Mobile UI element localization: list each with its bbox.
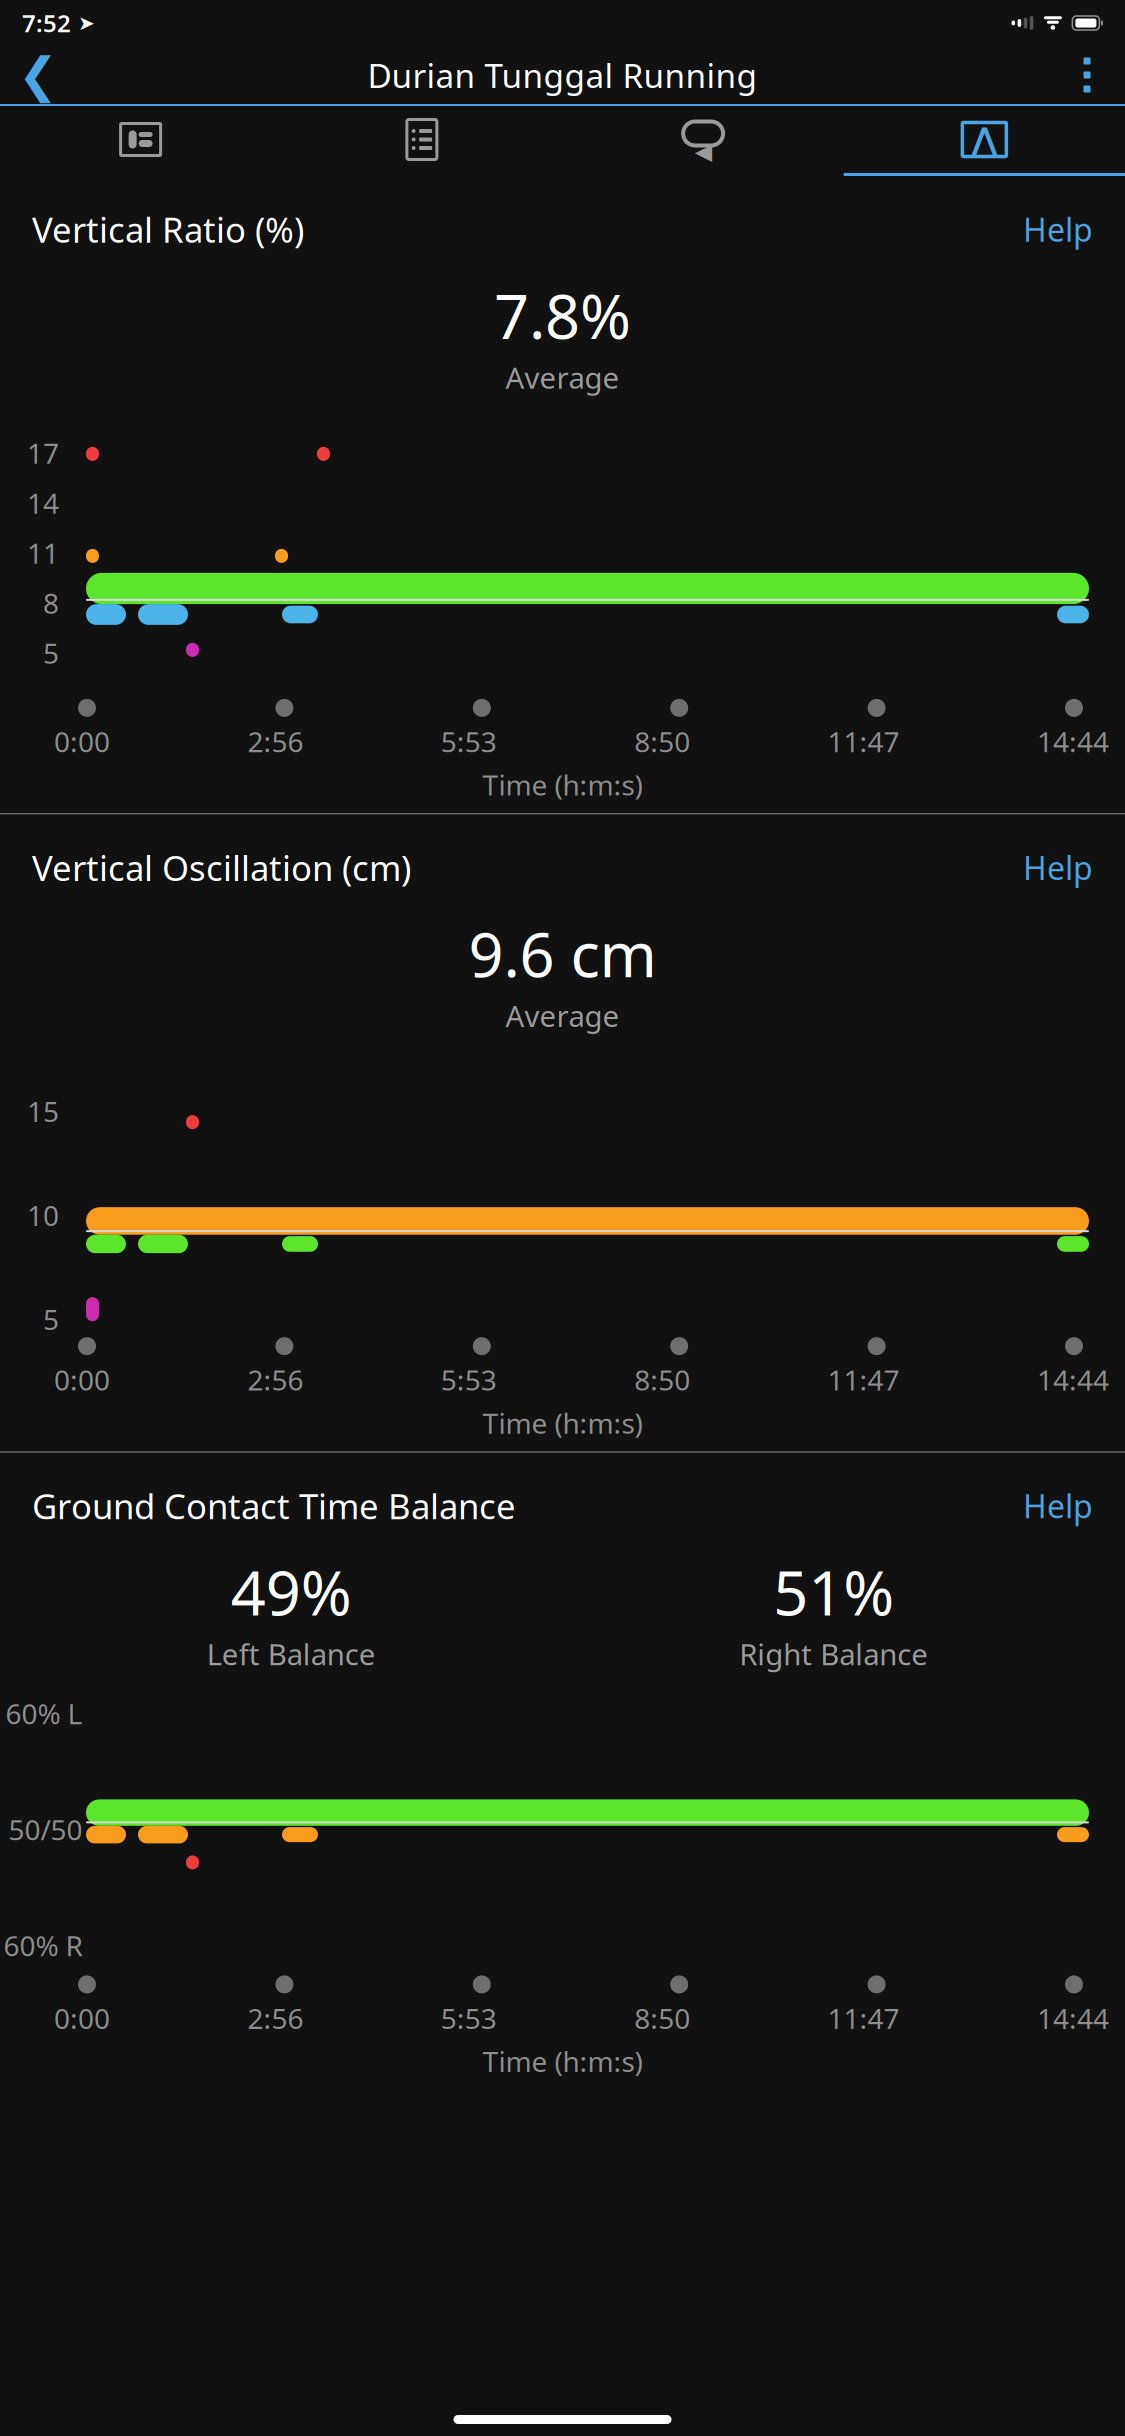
- staticText: 11:47: [828, 723, 900, 760]
- staticText: 60% L: [5, 1695, 82, 1732]
- staticText: 60% R: [3, 1927, 82, 1964]
- staticText: 15: [27, 1093, 59, 1130]
- staticText: 5: [43, 634, 59, 671]
- staticText: 0:00: [54, 723, 110, 760]
- staticText: 5: [43, 1301, 59, 1338]
- staticText: 7:52: [22, 7, 71, 39]
- button[interactable]: Map: [0, 106, 281, 176]
- staticText: 5:53: [441, 1361, 497, 1398]
- staticText: Durian Tunggal Running: [367, 53, 757, 97]
- staticText: 7.8%: [494, 274, 631, 356]
- staticText: ⋀: [971, 121, 998, 158]
- staticText: Help: [1023, 208, 1093, 250]
- button[interactable]: Laps: [562, 106, 844, 176]
- button[interactable]: Help: [1015, 200, 1101, 258]
- button[interactable]: Back: [6, 46, 70, 104]
- staticText: 0:00: [54, 1999, 110, 2037]
- staticText: Time (h:m:s): [482, 2043, 642, 2080]
- staticText: Vertical Oscillation (cm): [32, 844, 411, 890]
- staticText: Time (h:m:s): [482, 1404, 642, 1441]
- staticText: ◀: [695, 139, 712, 164]
- button[interactable]: Details: [281, 106, 562, 176]
- staticText: ❮: [18, 48, 58, 102]
- staticText: 11: [27, 534, 59, 571]
- staticText: 10: [27, 1197, 59, 1234]
- staticText: Help: [1023, 1484, 1093, 1527]
- staticText: Help: [1023, 846, 1093, 889]
- staticText: 14:44: [1037, 723, 1109, 760]
- staticText: 0:00: [54, 1361, 110, 1398]
- staticText: ➤: [78, 12, 95, 34]
- staticText: 5:53: [441, 1999, 497, 2037]
- staticText: 49%: [231, 1551, 352, 1632]
- staticText: 2:56: [247, 723, 303, 760]
- staticText: 50/50: [8, 1811, 82, 1848]
- staticText: 2:56: [247, 1999, 303, 2037]
- staticText: 9.6 cm: [468, 913, 656, 994]
- staticText: 14:44: [1037, 1361, 1109, 1398]
- staticText: Vertical Ratio (%): [32, 206, 304, 252]
- button[interactable]: Help: [1015, 1476, 1101, 1535]
- staticText: 14:44: [1037, 1999, 1109, 2037]
- staticText: 8:50: [634, 1361, 690, 1398]
- staticText: 11:47: [828, 1999, 900, 2037]
- staticText: Left Balance: [207, 1634, 376, 1673]
- staticText: 14: [27, 484, 59, 521]
- staticText: Ground Contact Time Balance: [32, 1483, 516, 1529]
- staticText: Average: [505, 996, 619, 1035]
- staticText: 11:47: [828, 1361, 900, 1398]
- staticText: 8:50: [634, 723, 690, 760]
- staticText: 8:50: [634, 1999, 690, 2037]
- staticText: 2:56: [247, 1361, 303, 1398]
- staticText: 51%: [773, 1551, 894, 1632]
- staticText: 17: [27, 434, 59, 471]
- staticText: 5:53: [441, 723, 497, 760]
- staticText: Right Balance: [739, 1634, 928, 1673]
- button[interactable]: More options: [1055, 46, 1119, 104]
- button[interactable]: Help: [1015, 838, 1101, 897]
- staticText: Time (h:m:s): [482, 766, 642, 803]
- staticText: Average: [505, 358, 619, 397]
- staticText: 8: [43, 584, 59, 621]
- button[interactable]: Charts: [844, 106, 1125, 176]
